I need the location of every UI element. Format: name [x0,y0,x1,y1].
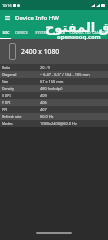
staticText: Ratio [2,65,40,70]
staticText: 10:16 [2,3,12,8]
button[interactable]: Open navigation menu [0,10,15,26]
staticText: 480 (xxhdpi) [40,86,63,91]
button[interactable]: Modes [0,120,108,127]
staticText: SYSTEM [35,30,49,35]
staticText: Size [2,79,40,84]
button[interactable]: Density [0,85,108,92]
staticText: 407 [40,107,47,112]
staticText: Modes [2,121,40,126]
button[interactable]: Refresh rate [0,113,108,120]
staticText: DATA [56,30,65,35]
staticText: 60.0 Hz [40,114,54,119]
staticText: SOC [2,30,10,35]
staticText: Diagonal [2,72,40,77]
button[interactable]: PPI [0,106,108,113]
staticText: 67 x 150 mm [40,79,64,84]
staticText: ~ 6.47 - 6.5" / 164 - 165 mm [40,72,90,77]
staticText: PPI [2,107,40,112]
staticText: DEVICE [15,30,28,35]
staticText: CAMERA [92,30,107,35]
staticText: opensooq.com [57,33,101,41]
button[interactable]: Ratio [0,64,108,71]
staticText: 409 [40,93,47,98]
staticText: 20 : 9 [40,65,50,70]
button[interactable]: CAMERA [91,26,108,39]
staticText: X DPI [2,93,40,98]
staticText: 1080x2400@60.0 Hz [40,121,77,126]
button[interactable]: DEVICE [11,26,31,39]
staticText: CONNECTION [69,30,91,35]
staticText: 2400 x 1080 [21,47,60,56]
staticText: 406 [40,100,47,105]
staticText: Refresh rate [2,114,40,119]
button[interactable]: Y DPI [0,99,108,106]
staticText: Density [2,86,40,91]
staticText: Device Info HW [15,14,59,22]
staticText: Y DPI [2,100,40,105]
button[interactable]: SOC [0,26,11,39]
button[interactable]: SYSTEM [31,26,52,39]
staticText: السوق المفتوح [45,18,108,36]
button[interactable]: X DPI [0,92,108,99]
button[interactable]: DATA [52,26,69,39]
button[interactable]: Size [0,78,108,85]
button[interactable]: CONNECTION [69,26,91,39]
button[interactable]: Diagonal [0,71,108,78]
